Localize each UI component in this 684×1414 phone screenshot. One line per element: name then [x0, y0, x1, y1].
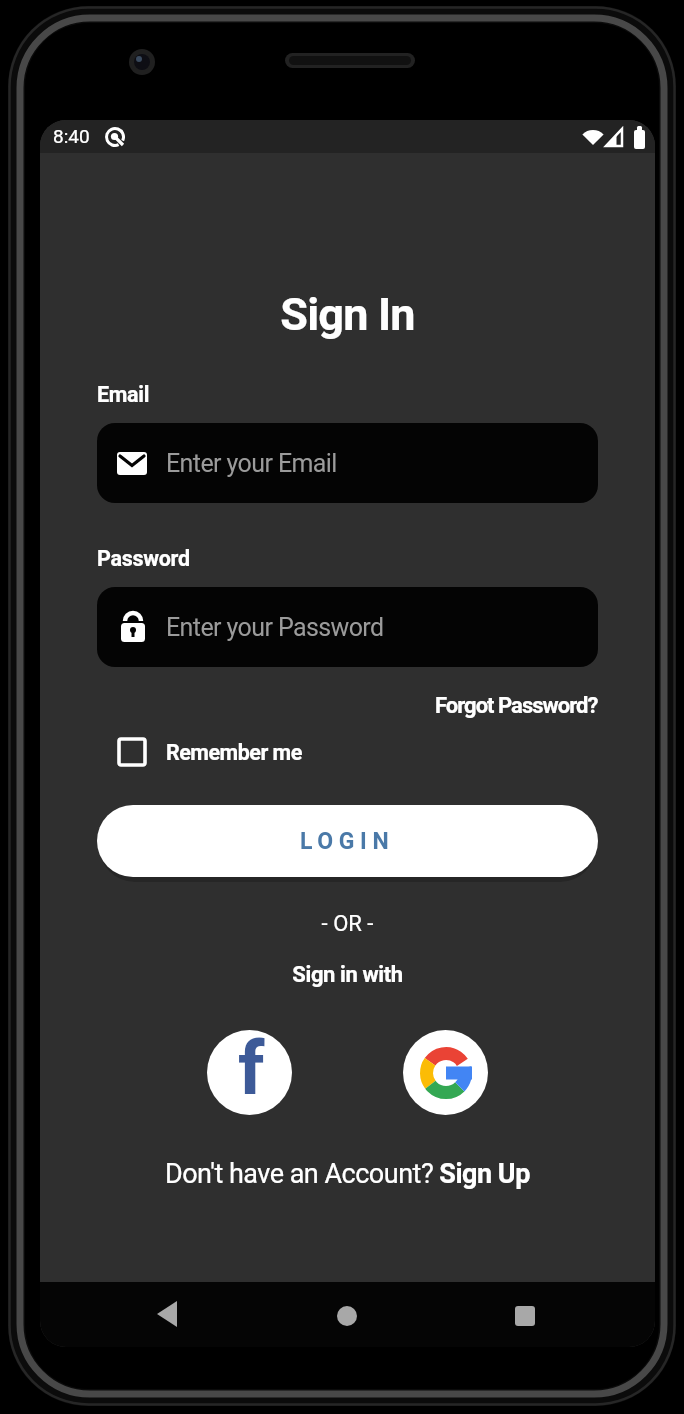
staticText: Enter your Email	[166, 449, 337, 478]
button[interactable]: Enter your Email	[97, 423, 598, 503]
button[interactable]: Remember me	[117, 737, 302, 767]
staticText: Password	[97, 546, 190, 571]
staticText: Sign In	[40, 288, 655, 341]
button[interactable]	[495, 1292, 555, 1337]
button[interactable]: Don't have an Account? Sign Up	[165, 1158, 530, 1190]
button[interactable]	[317, 1292, 377, 1337]
staticText: LOGIN	[300, 828, 395, 855]
staticText: Enter your Password	[166, 613, 384, 642]
staticText: Remember me	[166, 740, 302, 765]
staticText: - OR -	[40, 911, 655, 937]
staticText: Email	[97, 382, 150, 407]
button[interactable]	[403, 1030, 488, 1115]
staticText: f	[238, 1030, 265, 1110]
staticText: 8:40	[53, 125, 90, 147]
button[interactable]	[137, 1292, 197, 1337]
button[interactable]: LOGIN	[97, 805, 598, 877]
staticText: Sign in with	[40, 962, 655, 988]
button[interactable]: f	[207, 1030, 292, 1115]
button[interactable]: Forgot Password?	[435, 693, 598, 719]
button[interactable]: Enter your Password	[97, 587, 598, 667]
